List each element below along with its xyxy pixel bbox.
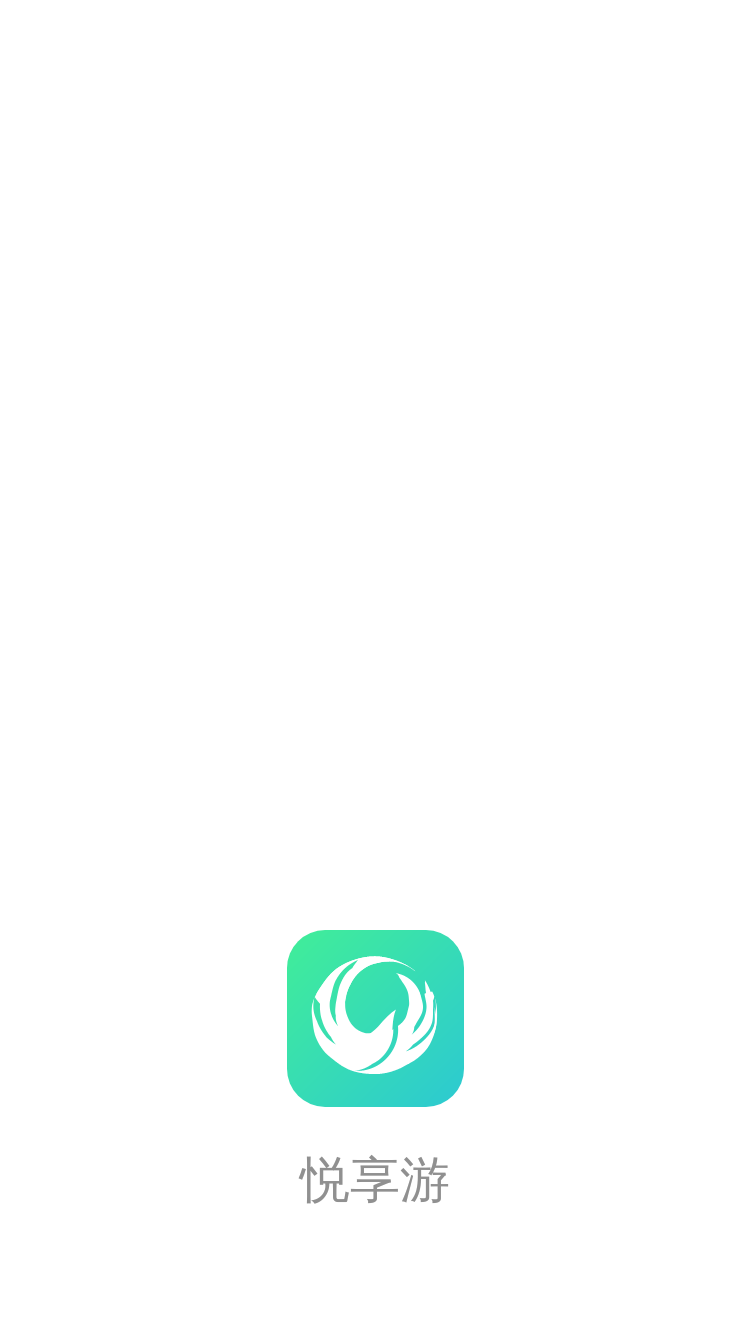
staticText: 悦享游 — [300, 1149, 450, 1212]
button[interactable]: App logo — [287, 930, 464, 1107]
